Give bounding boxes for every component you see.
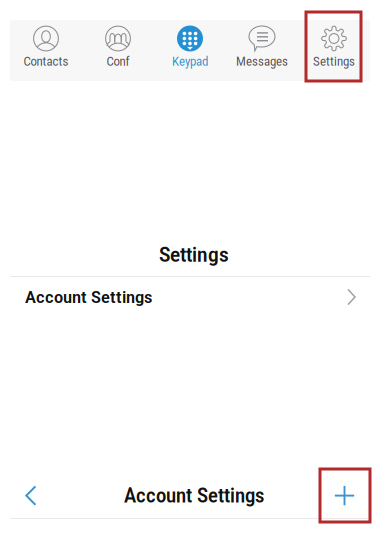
staticText: Account Settings — [124, 485, 264, 507]
button[interactable]: Account Settings — [10, 277, 370, 317]
staticText: Conf — [106, 55, 129, 69]
button[interactable]: Keypad — [154, 20, 226, 81]
staticText: Settings — [159, 243, 229, 267]
button[interactable]: Back — [18, 482, 45, 509]
staticText: Settings — [313, 55, 355, 69]
button[interactable]: Contacts — [10, 20, 82, 81]
button[interactable]: Conf — [82, 20, 154, 81]
button[interactable]: Settings — [298, 20, 370, 81]
staticText: Account Settings — [25, 287, 152, 307]
button[interactable]: Add — [331, 482, 358, 509]
staticText: Contacts — [23, 55, 68, 69]
staticText: Messages — [236, 55, 288, 69]
staticText: Keypad — [172, 55, 208, 69]
button[interactable]: Messages — [226, 20, 298, 81]
